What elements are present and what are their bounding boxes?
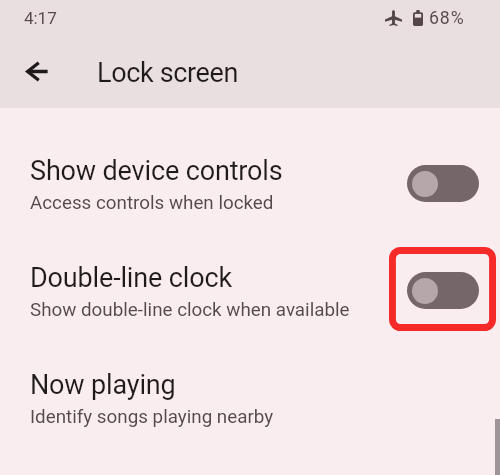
staticText: Identify songs playing nearby	[30, 406, 274, 428]
staticText: 4:17	[24, 8, 57, 28]
button[interactable]: Double-line clock toggle	[407, 272, 479, 309]
staticText: Now playing	[30, 369, 176, 401]
staticText: 68%	[429, 8, 465, 29]
staticText: Access controls when locked	[30, 192, 274, 214]
other: Battery 68 percent	[413, 10, 423, 26]
button[interactable]: Now playing	[0, 354, 500, 461]
button[interactable]: Show device controls	[0, 140, 500, 247]
button[interactable]: Show device controls toggle	[407, 165, 479, 202]
staticText: Double-line clock	[30, 262, 232, 294]
staticText: Lock screen	[97, 57, 239, 89]
button[interactable]: Double-line clock	[0, 247, 500, 354]
staticText: Show device controls	[30, 155, 283, 187]
staticText: Show double-line clock when available	[30, 299, 350, 321]
button[interactable]: Back	[15, 50, 58, 93]
other: Airplane mode	[385, 10, 402, 26]
